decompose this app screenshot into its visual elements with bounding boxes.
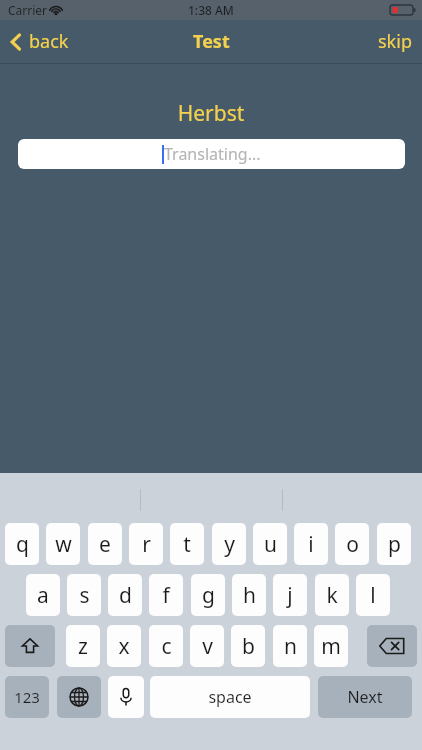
staticText: c <box>161 632 172 661</box>
staticText: u <box>264 530 277 559</box>
staticText: k <box>326 581 338 610</box>
staticText: l <box>370 581 376 610</box>
staticText: back <box>29 29 69 54</box>
staticText: e <box>99 530 111 559</box>
button[interactable]: g <box>191 574 225 616</box>
staticText: f <box>162 581 170 610</box>
button[interactable]: d <box>108 574 142 616</box>
button[interactable]: w <box>46 523 80 565</box>
button[interactable]: a <box>26 574 60 616</box>
button[interactable]: b <box>231 625 265 667</box>
staticText: h <box>243 581 256 610</box>
button[interactable]: Translating... <box>18 139 405 169</box>
staticText: a <box>37 581 49 610</box>
staticText: y <box>224 530 235 559</box>
staticText: p <box>388 530 401 559</box>
staticText: r <box>142 530 151 559</box>
button[interactable]: i <box>294 523 328 565</box>
button[interactable]: c <box>149 625 183 667</box>
staticText: o <box>346 530 359 559</box>
button[interactable]: space <box>150 676 310 718</box>
staticText: Translating... <box>164 143 261 165</box>
staticText: space <box>208 686 252 708</box>
button[interactable]: y <box>212 523 246 565</box>
staticText: n <box>284 632 297 661</box>
button[interactable]: e <box>88 523 122 565</box>
button[interactable]: u <box>253 523 287 565</box>
button[interactable]: n <box>273 625 307 667</box>
button[interactable]: skip <box>378 29 412 54</box>
staticText: b <box>242 632 255 661</box>
staticText: m <box>321 632 341 661</box>
staticText: x <box>118 632 130 661</box>
button[interactable]: j <box>273 574 307 616</box>
staticText: z <box>78 632 88 661</box>
staticText: 1:38 AM <box>188 2 234 18</box>
button[interactable]: v <box>190 625 224 667</box>
button[interactable]: l <box>356 574 390 616</box>
button[interactable]: f <box>149 574 183 616</box>
staticText: Carrier <box>8 2 48 18</box>
staticText: w <box>55 530 72 559</box>
staticText: v <box>202 632 213 661</box>
button[interactable]: 123 <box>5 676 49 718</box>
staticText: g <box>202 581 215 610</box>
staticText: skip <box>378 29 412 54</box>
button[interactable]: m <box>314 625 348 667</box>
button[interactable]: Dictate <box>108 676 144 718</box>
button[interactable]: x <box>107 625 141 667</box>
button[interactable]: o <box>335 523 369 565</box>
button[interactable]: Backspace <box>367 625 417 667</box>
button[interactable]: Shift <box>5 625 55 667</box>
staticText: Test <box>193 29 230 54</box>
button[interactable]: back <box>8 29 69 54</box>
staticText: Herbst <box>0 99 422 128</box>
staticText: q <box>16 530 29 559</box>
button[interactable]: t <box>170 523 204 565</box>
button[interactable]: p <box>377 523 411 565</box>
button[interactable]: r <box>129 523 163 565</box>
button[interactable]: z <box>66 625 100 667</box>
staticText: Next <box>347 686 383 708</box>
button[interactable]: Switch keyboard <box>57 676 101 718</box>
button[interactable]: s <box>67 574 101 616</box>
staticText: s <box>79 581 90 610</box>
staticText: i <box>308 530 314 559</box>
button[interactable]: Next <box>318 676 412 718</box>
staticText: t <box>183 530 191 559</box>
staticText: 123 <box>14 687 40 707</box>
staticText: j <box>287 581 293 610</box>
button[interactable]: k <box>315 574 349 616</box>
button[interactable]: h <box>232 574 266 616</box>
staticText: d <box>119 581 132 610</box>
button[interactable]: q <box>5 523 39 565</box>
